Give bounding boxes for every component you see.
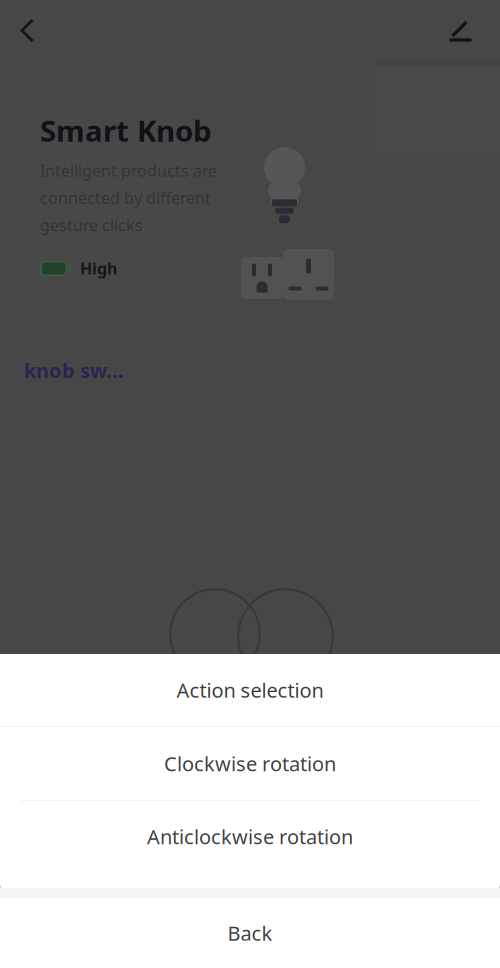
staticText: gesture clicks	[40, 214, 143, 236]
staticText: Anticlockwise rotation	[147, 823, 353, 850]
button[interactable]: Clockwise rotation	[0, 727, 500, 800]
staticText: connected by different	[40, 187, 211, 208]
staticText: Smart Knob	[40, 111, 212, 150]
button[interactable]: Anticlockwise rotation	[0, 801, 500, 872]
staticText: High	[80, 258, 117, 279]
button[interactable]: Action selection	[0, 654, 500, 726]
staticText: Clockwise rotation	[164, 750, 336, 777]
button[interactable]: Back	[0, 898, 500, 968]
staticText: Intelligent products are	[40, 160, 217, 181]
button[interactable]: Edit	[449, 19, 472, 42]
staticText: Action selection	[176, 677, 323, 703]
button[interactable]: Back	[19, 18, 36, 43]
staticText: knob sw...	[24, 357, 124, 383]
staticText: Back	[227, 920, 272, 946]
